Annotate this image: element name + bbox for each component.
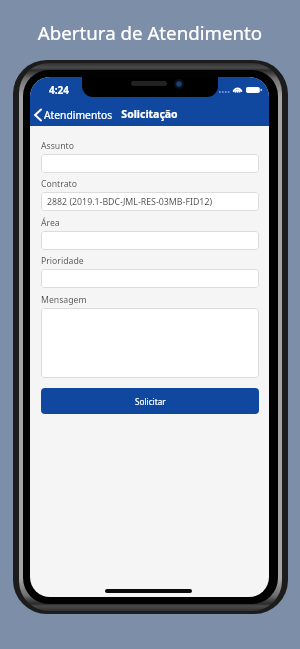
staticText: 4:24 bbox=[49, 83, 69, 97]
staticText: Prioridade bbox=[41, 255, 84, 267]
staticText: Assunto bbox=[41, 140, 75, 152]
staticText: Solicitação bbox=[30, 107, 269, 121]
staticText: Abertura de Atendimento bbox=[0, 20, 300, 45]
button[interactable]: Atendimentos bbox=[30, 106, 117, 124]
staticText: Contrato bbox=[41, 178, 77, 190]
staticText: Solicitar bbox=[135, 396, 166, 407]
button[interactable] bbox=[41, 154, 259, 173]
button[interactable] bbox=[41, 231, 259, 250]
staticText: 2882 (2019.1-BDC-JML-RES-03MB-FID12) bbox=[47, 196, 213, 208]
staticText: Mensagem bbox=[41, 294, 87, 306]
button[interactable]: 2882 (2019.1-BDC-JML-RES-03MB-FID12) bbox=[41, 192, 259, 211]
button[interactable] bbox=[41, 269, 259, 288]
staticText: Atendimentos bbox=[44, 108, 113, 122]
button[interactable]: Solicitar bbox=[41, 388, 259, 414]
staticText: Área bbox=[41, 217, 60, 229]
button[interactable] bbox=[41, 308, 259, 378]
